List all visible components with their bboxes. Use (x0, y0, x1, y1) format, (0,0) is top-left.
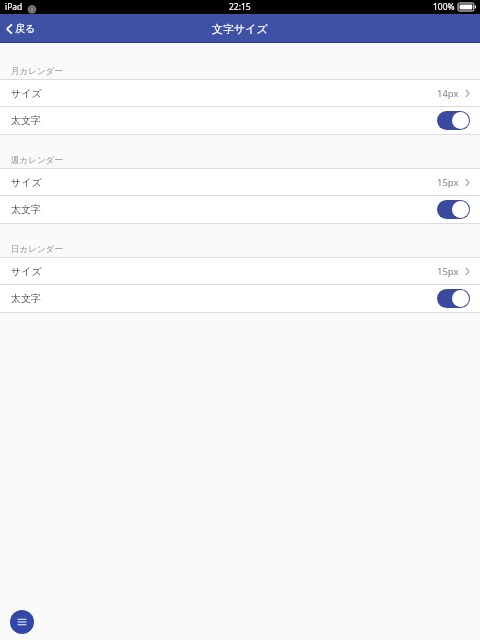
staticText: 15px (437, 265, 459, 278)
button[interactable]: 戻る (6, 22, 36, 35)
staticText: 文字サイズ (212, 22, 268, 36)
staticText: 週カレンダー (11, 155, 63, 166)
staticText: 14px (437, 87, 459, 100)
staticText: 100% (433, 1, 455, 13)
staticText: iPad (5, 1, 23, 13)
button[interactable]: Bold toggle, on (437, 289, 470, 308)
button[interactable]: Bold toggle, on (437, 200, 470, 219)
staticText: サイズ (11, 87, 42, 100)
button[interactable]: Bold toggle, on (437, 111, 470, 130)
staticText: 太文字 (11, 292, 41, 305)
button[interactable]: サイズ (0, 258, 480, 284)
staticText: 太文字 (11, 203, 41, 216)
button[interactable]: 太文字 (0, 107, 480, 134)
staticText: 月カレンダー (11, 66, 63, 77)
staticText: 戻る (15, 22, 36, 35)
button[interactable]: サイズ (0, 169, 480, 195)
staticText: 22:15 (229, 1, 251, 13)
button[interactable]: サイズ (0, 80, 480, 106)
staticText: 日カレンダー (11, 244, 63, 255)
button[interactable]: 太文字 (0, 196, 480, 223)
staticText: サイズ (11, 176, 42, 189)
button[interactable]: 太文字 (0, 285, 480, 312)
button[interactable]: Menu (10, 610, 34, 634)
staticText: 太文字 (11, 114, 41, 127)
staticText: サイズ (11, 265, 42, 278)
staticText: 15px (437, 176, 459, 189)
